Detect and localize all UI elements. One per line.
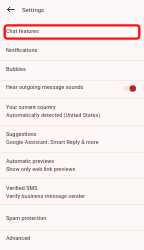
button[interactable]: Verified SMS <box>0 179 144 205</box>
button[interactable]: Bubbles <box>0 61 144 81</box>
staticText: Verify business message sender <box>6 193 85 199</box>
button[interactable]: Your current country <box>0 99 144 126</box>
staticText: Suggestions <box>6 131 37 137</box>
button[interactable]: Advanced <box>0 231 144 250</box>
staticText: Chat features <box>6 28 39 34</box>
staticText: Your current country <box>6 104 56 110</box>
staticText: Verified SMS <box>6 185 38 191</box>
staticText: Hear outgoing message sounds <box>6 84 84 90</box>
staticText: Settings <box>22 6 45 13</box>
staticText: Google Assistant, Smart Reply & more <box>6 139 99 145</box>
button[interactable]: Spam protection <box>0 205 144 231</box>
staticText: Automatic previews <box>6 158 55 164</box>
button[interactable]: Automatic previews <box>0 153 144 179</box>
button[interactable]: Notifications <box>0 41 144 61</box>
button[interactable]: Chat features <box>0 24 144 40</box>
button[interactable]: Suggestions <box>0 126 144 153</box>
staticText: Notifications <box>6 47 38 53</box>
button[interactable]: Back <box>3 2 17 16</box>
staticText: Advanced <box>6 235 31 241</box>
staticText: Spam protection <box>6 215 47 221</box>
button[interactable]: Hear outgoing message sounds <box>0 81 144 99</box>
staticText: Show only web link previews <box>6 166 76 172</box>
staticText: Automatically detected (United States) <box>6 112 101 118</box>
staticText: Bubbles <box>6 66 26 72</box>
